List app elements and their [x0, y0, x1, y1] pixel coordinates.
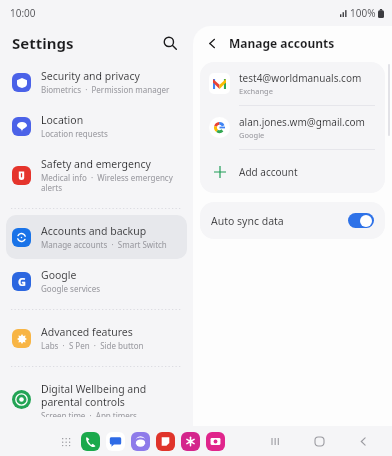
staticText: Settings	[12, 33, 74, 53]
staticText: test4@worldmanuals.com	[239, 71, 362, 85]
staticText: Medical info · Wireless emergency alerts	[41, 172, 181, 193]
button[interactable]: Apps	[58, 434, 74, 450]
button[interactable]: Digital Wellbeing and parental controls	[6, 373, 187, 426]
staticText: 100%	[350, 6, 376, 20]
staticText: Exchange	[239, 86, 273, 96]
staticText: Advanced features	[41, 325, 133, 339]
staticText: Screen time · App timers	[41, 410, 137, 417]
staticText: Google	[239, 130, 265, 140]
button[interactable]: Messages	[106, 432, 125, 451]
staticText: Google	[41, 268, 77, 282]
button[interactable]: Search	[157, 30, 183, 56]
button[interactable]: Security and privacy	[6, 60, 187, 104]
button[interactable]: Back	[201, 32, 223, 54]
staticText: Safety and emergency	[41, 157, 151, 171]
staticText: G	[18, 274, 26, 289]
button[interactable]: Internet	[131, 432, 150, 451]
button[interactable]: Accounts and backup	[6, 215, 187, 259]
staticText: Manage accounts · Smart Switch	[41, 239, 167, 250]
button[interactable]: G	[6, 259, 187, 303]
staticText: Accounts and backup	[41, 224, 147, 238]
button[interactable]: Advanced features	[6, 316, 187, 360]
button[interactable]: Location	[6, 104, 187, 148]
button[interactable]: Recents	[264, 430, 286, 452]
button[interactable]: Back	[352, 430, 374, 452]
staticText: Digital Wellbeing and parental controls	[41, 382, 181, 409]
button[interactable]: alan.jones.wm@gmail.com	[200, 106, 385, 149]
button[interactable]: Phone	[81, 432, 100, 451]
button[interactable]: Camera	[206, 432, 225, 451]
button[interactable]: Add account	[200, 150, 385, 193]
button[interactable]: test4@worldmanuals.com	[200, 62, 385, 105]
staticText: Labs · S Pen · Side button	[41, 340, 144, 351]
button[interactable]: Home	[308, 430, 330, 452]
staticText: Add account	[239, 165, 298, 179]
staticText: Google services	[41, 283, 101, 294]
staticText: Location	[41, 113, 84, 127]
staticText: Security and privacy	[41, 69, 140, 83]
staticText: Manage accounts	[229, 35, 335, 51]
button[interactable]: Auto sync data	[200, 202, 385, 239]
button[interactable]: Notes	[156, 432, 175, 451]
staticText: Biometrics · Permission manager	[41, 84, 170, 95]
staticText: 10:00	[10, 6, 36, 20]
button[interactable]: Gallery	[181, 432, 200, 451]
staticText: Auto sync data	[211, 214, 348, 228]
staticText: Location requests	[41, 128, 108, 139]
button[interactable]: Safety and emergency	[6, 148, 187, 202]
staticText: alan.jones.wm@gmail.com	[239, 115, 365, 129]
